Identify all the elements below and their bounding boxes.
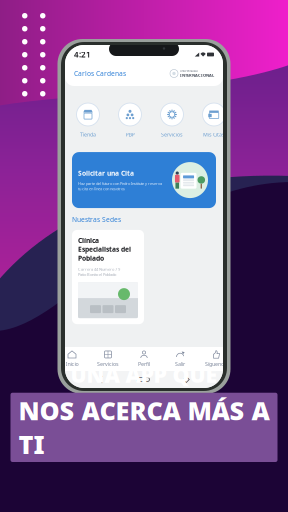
staticText: Tienda <box>80 131 96 138</box>
staticText: Síguenos <box>205 360 227 368</box>
staticText: UNA APP QUE <box>70 360 217 389</box>
staticText: Haz parte del futuro con Pedro Institute… <box>78 181 162 191</box>
button[interactable]: Síguenos <box>202 350 230 368</box>
button[interactable]: Servicios <box>155 103 189 138</box>
staticText: NOS ACERCA MÁS A TI <box>18 394 269 461</box>
button[interactable]: Mis Citas <box>197 103 231 138</box>
staticText: Carrera 44 Numero 7 9 Patio Bonito el Po… <box>78 266 120 277</box>
button[interactable]: Universidad Internacional <box>170 69 214 78</box>
button[interactable]: Salir <box>166 350 194 368</box>
staticText: INTERNACIONAL <box>180 73 214 78</box>
button[interactable]: Perfil <box>130 350 158 368</box>
button[interactable]: Inicio <box>58 350 86 368</box>
staticText: Salir <box>175 360 185 368</box>
button[interactable]: Carlos Cardenas <box>74 69 126 78</box>
staticText: Solicitar una Cita <box>78 169 134 178</box>
button[interactable]: PBP <box>113 103 147 138</box>
staticText: Servicios <box>97 360 119 368</box>
staticText: PBP <box>125 131 134 138</box>
staticText: UNIVERSIDAD <box>180 69 198 73</box>
staticText: Mis Citas <box>203 131 225 138</box>
staticText: 4:21 <box>74 49 91 60</box>
button[interactable]: Clínica Especialistas del Poblado <box>72 230 144 324</box>
staticText: Perfil <box>138 360 150 368</box>
staticText: Carlos Cardenas <box>74 69 126 78</box>
button[interactable]: Servicios <box>94 350 122 368</box>
button[interactable]: Solicitar una Cita <box>72 152 216 208</box>
staticText: Servicios <box>161 131 183 138</box>
staticText: Nuestras Sedes <box>72 215 121 224</box>
staticText: Inicio <box>65 360 78 368</box>
button[interactable]: Tienda <box>71 103 105 138</box>
staticText: Clínica Especialistas del Poblado <box>78 236 131 262</box>
